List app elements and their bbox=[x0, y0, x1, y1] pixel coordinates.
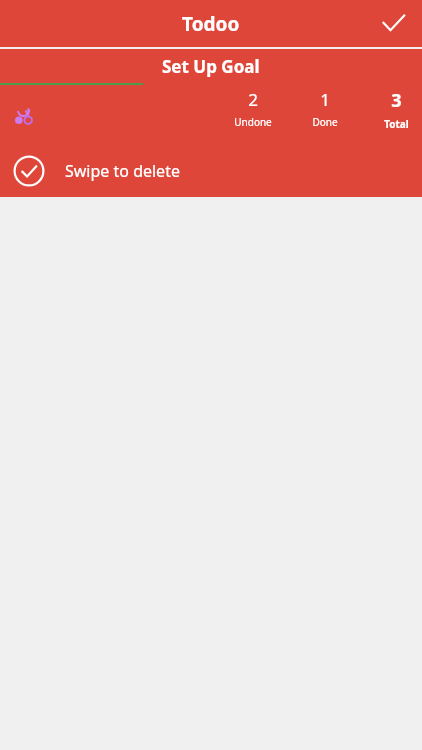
button[interactable]: 2 bbox=[219, 88, 287, 129]
staticText: 2 bbox=[248, 88, 258, 111]
staticText: Set Up Goal bbox=[162, 55, 260, 78]
button[interactable]: Confirm bbox=[370, 1, 416, 47]
staticText: 3 bbox=[391, 88, 402, 113]
button[interactable]: 3 bbox=[364, 88, 422, 131]
staticText: Swipe to delete bbox=[65, 160, 180, 182]
staticText: Undone bbox=[234, 115, 272, 129]
staticText: 1 bbox=[320, 88, 330, 111]
button[interactable]: Swap order bbox=[4, 95, 44, 135]
button[interactable]: 1 bbox=[295, 88, 355, 129]
button[interactable]: Toggle done bbox=[12, 154, 46, 188]
button[interactable]: Toggle done bbox=[0, 144, 422, 197]
button[interactable]: Set Up Goal bbox=[0, 49, 422, 85]
staticText: Todoo bbox=[182, 11, 240, 37]
staticText: Total bbox=[384, 117, 409, 131]
staticText: Done bbox=[312, 115, 338, 129]
